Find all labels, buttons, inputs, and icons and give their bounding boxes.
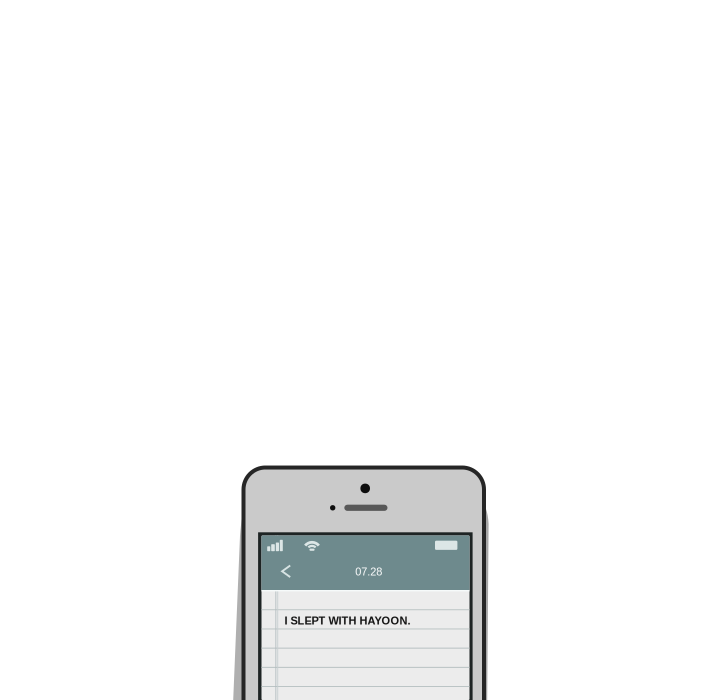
button[interactable]: Back	[261, 556, 303, 589]
staticText: I SLEPT WITH HAYOON.	[284, 614, 410, 627]
staticText: 07.28	[355, 566, 382, 578]
